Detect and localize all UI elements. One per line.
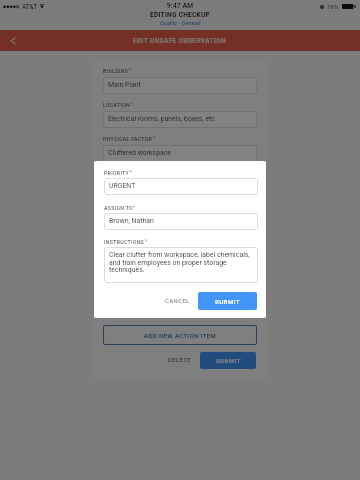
staticText: DELETE — [168, 357, 192, 364]
button[interactable]: Brown, Nathan — [104, 213, 258, 230]
staticText: * — [133, 205, 135, 210]
staticText: * — [129, 68, 131, 73]
staticText: Brown, Nathan — [109, 217, 154, 225]
staticText: LOCATION — [103, 102, 131, 108]
staticText: * — [129, 170, 131, 175]
button[interactable]: SUBMIT — [200, 352, 256, 369]
staticText: Main Plant — [108, 81, 141, 89]
staticText: SUBMIT — [216, 357, 241, 364]
staticText: PHYSICAL FACTOR — [103, 136, 153, 142]
staticText: CANCEL — [165, 298, 190, 305]
staticText: * — [131, 102, 133, 107]
button[interactable]: DELETE — [163, 354, 197, 367]
staticText: AT&T — [22, 3, 38, 11]
staticText: SUBMIT — [215, 298, 240, 305]
staticText: BUILDING — [103, 68, 129, 74]
button[interactable]: ADD NEW ACTION ITEM — [103, 325, 257, 345]
button[interactable]: Back — [0, 30, 26, 51]
button[interactable]: SUBMIT — [198, 292, 257, 310]
staticText: EDITING CHECKUP — [150, 11, 211, 19]
button[interactable]: URGENT — [103, 179, 257, 196]
staticText: * — [145, 239, 147, 244]
staticText: PRIORITY — [103, 170, 129, 176]
button[interactable]: CANCEL — [160, 295, 195, 308]
staticText: * — [130, 170, 132, 175]
staticText: Clear clutter from workspace, label chem… — [109, 251, 254, 273]
staticText: * — [153, 136, 155, 141]
staticText: ASSIGN TO — [104, 205, 133, 211]
staticText: 9:47 AM — [140, 2, 220, 10]
staticText: 76% — [327, 3, 339, 10]
button[interactable]: Clear clutter from workspace, label chem… — [104, 247, 258, 283]
staticText: EDIT UNSAFE OBSERVATION — [133, 37, 227, 45]
staticText: Cluttered workspace — [108, 149, 172, 157]
button[interactable]: Main Plant — [103, 77, 257, 94]
staticText: Electrical rooms, panels, boxes, etc — [108, 115, 215, 123]
staticText: PRIORITY — [104, 170, 130, 176]
button[interactable]: Electrical rooms, panels, boxes, etc — [103, 111, 257, 128]
staticText: INSTRUCTIONS — [104, 239, 145, 245]
button[interactable]: Cluttered workspace — [103, 145, 257, 162]
staticText: ADD NEW ACTION ITEM — [144, 332, 217, 339]
staticText: Quality - General — [160, 20, 201, 26]
staticText: URGENT — [108, 183, 135, 191]
staticText: URGENT — [109, 182, 136, 190]
button[interactable]: URGENT — [104, 178, 258, 195]
